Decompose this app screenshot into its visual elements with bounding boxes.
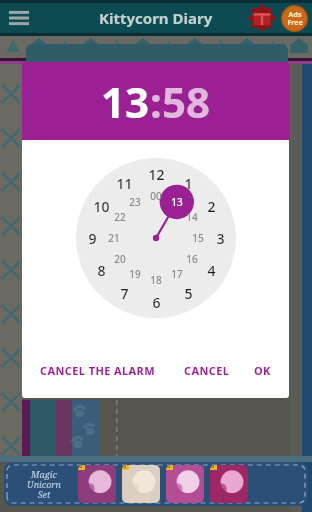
staticText: 22: [114, 210, 126, 224]
staticText: Kittycorn Diary: [99, 8, 213, 28]
staticText: 23: [129, 195, 141, 209]
staticText: Magic Unicorn Set: [27, 468, 61, 500]
button[interactable]: Promoted app: [166, 465, 204, 503]
staticText: CANCEL: [184, 363, 230, 378]
staticText: 7: [120, 284, 129, 303]
staticText: 20: [114, 252, 126, 266]
staticText: 12: [148, 165, 165, 184]
staticText: Ad: [166, 465, 171, 470]
staticText: OK: [254, 363, 271, 378]
button[interactable]: OK: [252, 359, 273, 382]
button[interactable]: Select hour: [76, 158, 236, 318]
staticText: 21: [108, 231, 120, 245]
button[interactable]: 13: [101, 73, 150, 130]
button[interactable]: Menu: [6, 4, 34, 32]
staticText: :: [150, 73, 162, 130]
staticText: 13: [171, 195, 183, 209]
button[interactable]: CANCEL: [182, 359, 232, 382]
staticText: 8: [97, 261, 106, 280]
staticText: CANCEL THE ALARM: [40, 363, 155, 378]
staticText: 15: [192, 231, 204, 245]
staticText: 3: [216, 229, 225, 248]
staticText: Ad: [210, 465, 215, 470]
button[interactable]: Promoted app: [78, 465, 116, 503]
button[interactable]: Promoted app: [122, 465, 160, 503]
staticText: 19: [129, 267, 141, 281]
staticText: 2: [207, 197, 216, 216]
staticText: Ad: [122, 465, 127, 470]
staticText: 18: [150, 273, 162, 287]
button[interactable]: Free prize: [247, 3, 277, 33]
staticText: 14: [186, 210, 198, 224]
staticText: 1: [184, 174, 193, 193]
staticText: 10: [93, 197, 110, 216]
staticText: 5: [184, 284, 193, 303]
staticText: Ads Free: [287, 10, 303, 27]
staticText: 6: [152, 293, 161, 312]
staticText: Ad: [78, 465, 83, 470]
staticText: 4: [207, 261, 216, 280]
staticText: 00: [150, 189, 162, 203]
staticText: 17: [171, 267, 183, 281]
staticText: 16: [186, 252, 198, 266]
button[interactable]: Promoted app: [210, 465, 248, 503]
staticText: 9: [88, 229, 97, 248]
staticText: 11: [116, 174, 133, 193]
button[interactable]: Ads free: [281, 5, 308, 32]
button[interactable]: 58: [162, 73, 211, 130]
button[interactable]: CANCEL THE ALARM: [38, 359, 157, 382]
